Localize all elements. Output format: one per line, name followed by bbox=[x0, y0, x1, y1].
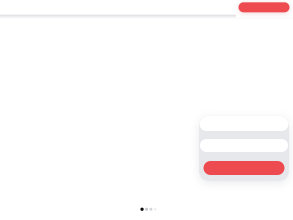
button[interactable]: Action bbox=[236, 0, 293, 18]
button[interactable]: Option two bbox=[200, 139, 288, 152]
button[interactable]: Confirm bbox=[203, 161, 284, 175]
